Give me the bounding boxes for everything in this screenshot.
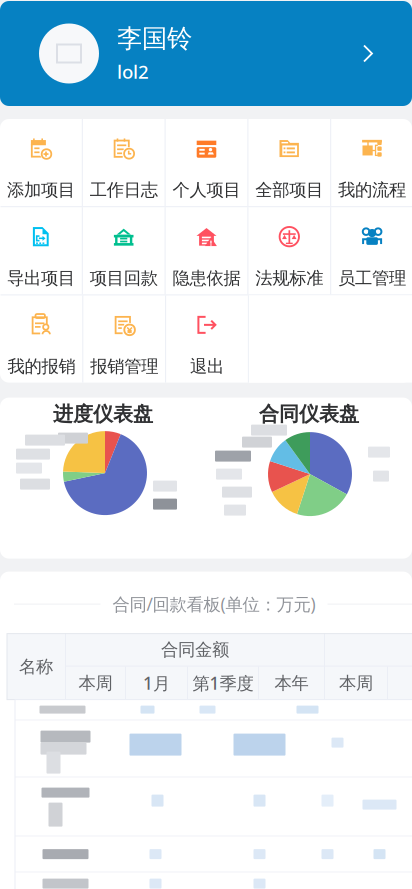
staticText: 全部项目: [255, 179, 323, 201]
staticText: 合同金额: [161, 639, 229, 660]
staticText: 添加项目: [7, 179, 75, 201]
button[interactable]: 全部项目: [248, 119, 330, 206]
button[interactable]: 个人项目: [166, 119, 247, 206]
staticText: 我的流程: [338, 179, 406, 201]
button[interactable]: 项目回款: [83, 207, 165, 294]
staticText: 本周: [339, 672, 373, 694]
staticText: 李国铃: [117, 23, 192, 54]
staticText: 本周: [78, 672, 112, 694]
staticText: 员工管理: [338, 268, 406, 289]
staticText: 隐患依据: [172, 268, 240, 289]
staticText: lol2: [117, 59, 149, 84]
staticText: 工作日志: [90, 179, 158, 201]
staticText: 我的报销: [7, 356, 75, 377]
button[interactable]: 导出项目: [0, 207, 82, 294]
staticText: 导出项目: [7, 268, 75, 289]
staticText: 退出: [190, 356, 224, 377]
staticText: 个人项目: [172, 179, 240, 201]
staticText: 合同/回款看板(单位：万元): [112, 593, 315, 616]
button[interactable]: 添加项目: [0, 119, 82, 206]
button[interactable]: 李国铃: [0, 1, 412, 106]
button[interactable]: 工作日志: [83, 119, 165, 206]
button[interactable]: 我的报销: [0, 295, 82, 383]
button[interactable]: 隐患依据: [166, 207, 247, 294]
button[interactable]: 我的流程: [331, 119, 412, 206]
staticText: 报销管理: [90, 356, 158, 377]
staticText: 项目回款: [90, 268, 158, 289]
staticText: 本年: [274, 672, 308, 694]
staticText: 合同仪表盘: [259, 402, 359, 426]
staticText: 第1季度: [192, 672, 253, 695]
button[interactable]: 退出: [166, 295, 248, 383]
button[interactable]: 法规标准: [248, 207, 330, 294]
button[interactable]: 员工管理: [331, 207, 412, 294]
staticText: 法规标准: [255, 268, 323, 289]
staticText: 进度仪表盘: [53, 402, 153, 426]
button[interactable]: 报销管理: [83, 295, 165, 383]
staticText: 名称: [19, 656, 53, 677]
staticText: 1月: [143, 672, 170, 695]
